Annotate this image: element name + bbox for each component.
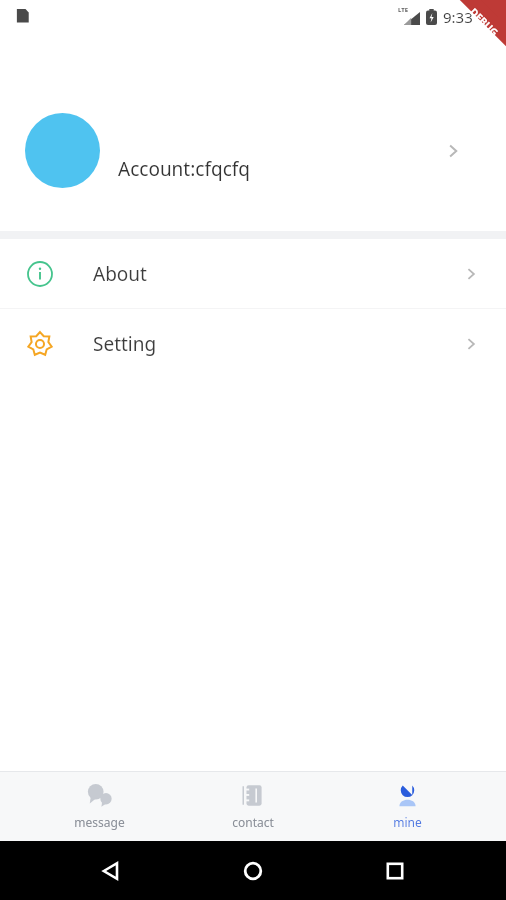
staticText: message — [74, 814, 125, 830]
staticText: DEBUG — [467, 5, 502, 39]
staticText: LTE — [398, 6, 409, 14]
staticText: Setting — [93, 331, 157, 357]
staticText: About — [93, 261, 147, 287]
button[interactable]: Account:cfqcfq — [0, 34, 506, 231]
button[interactable]: Home — [238, 856, 268, 886]
button[interactable]: Recent apps — [380, 856, 410, 886]
staticText: Account:cfqcfq — [118, 156, 250, 182]
button[interactable]: About — [0, 239, 506, 308]
staticText: 9:33 — [443, 7, 473, 27]
staticText: contact — [232, 814, 274, 830]
staticText: mine — [393, 814, 422, 830]
button[interactable]: message — [44, 771, 154, 841]
button[interactable]: mine — [352, 771, 462, 841]
button[interactable]: Back — [96, 856, 126, 886]
button[interactable]: Setting — [0, 309, 506, 378]
button[interactable]: contact — [198, 771, 308, 841]
